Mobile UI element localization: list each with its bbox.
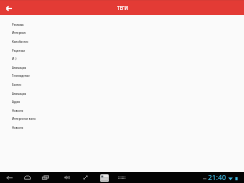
button[interactable]: Back (4, 172, 15, 183)
staticText: И :) (12, 57, 17, 61)
button[interactable]: Кинобизнес (0, 37, 244, 46)
staticText: ТЕГИ (117, 5, 128, 11)
staticText: Кинобизнес (12, 40, 29, 44)
staticText: Новости (12, 109, 24, 113)
staticText: Рецензии (12, 49, 26, 53)
staticText: Телевидение (12, 74, 30, 78)
button[interactable]: Аудио (0, 97, 244, 106)
button[interactable]: Новости (0, 123, 244, 132)
button[interactable]: Анимация (0, 63, 244, 72)
staticText: Новости (12, 126, 24, 130)
button[interactable]: Рецензии (0, 46, 244, 55)
button[interactable]: Телевидение (0, 71, 244, 80)
staticText: Аудио (12, 100, 21, 104)
staticText: Интервью (12, 31, 26, 35)
button[interactable]: Новости (0, 106, 244, 115)
button[interactable]: Интервью (0, 28, 244, 37)
button[interactable]: Интересное кино (0, 114, 244, 123)
button[interactable]: И :) (0, 54, 244, 63)
button[interactable]: Home (22, 172, 33, 183)
button[interactable]: Back (3, 3, 14, 14)
button[interactable]: Expand (80, 172, 91, 183)
staticText: Анимация (12, 66, 27, 70)
button[interactable]: Screenshot preview (99, 172, 110, 183)
button[interactable]: Анимация (0, 89, 244, 98)
button[interactable]: Реклама (0, 20, 244, 29)
button[interactable]: Recent apps (40, 172, 51, 183)
staticText: Бизнес (12, 83, 22, 87)
button[interactable]: Volume (61, 172, 72, 183)
staticText: Интересное кино (12, 117, 36, 121)
staticText: 21:40 (208, 173, 226, 183)
button[interactable]: Бизнес (0, 80, 244, 89)
staticText: Анимация (12, 92, 27, 96)
staticText: Реклама (12, 23, 24, 27)
button[interactable]: Keyboard (116, 172, 127, 183)
